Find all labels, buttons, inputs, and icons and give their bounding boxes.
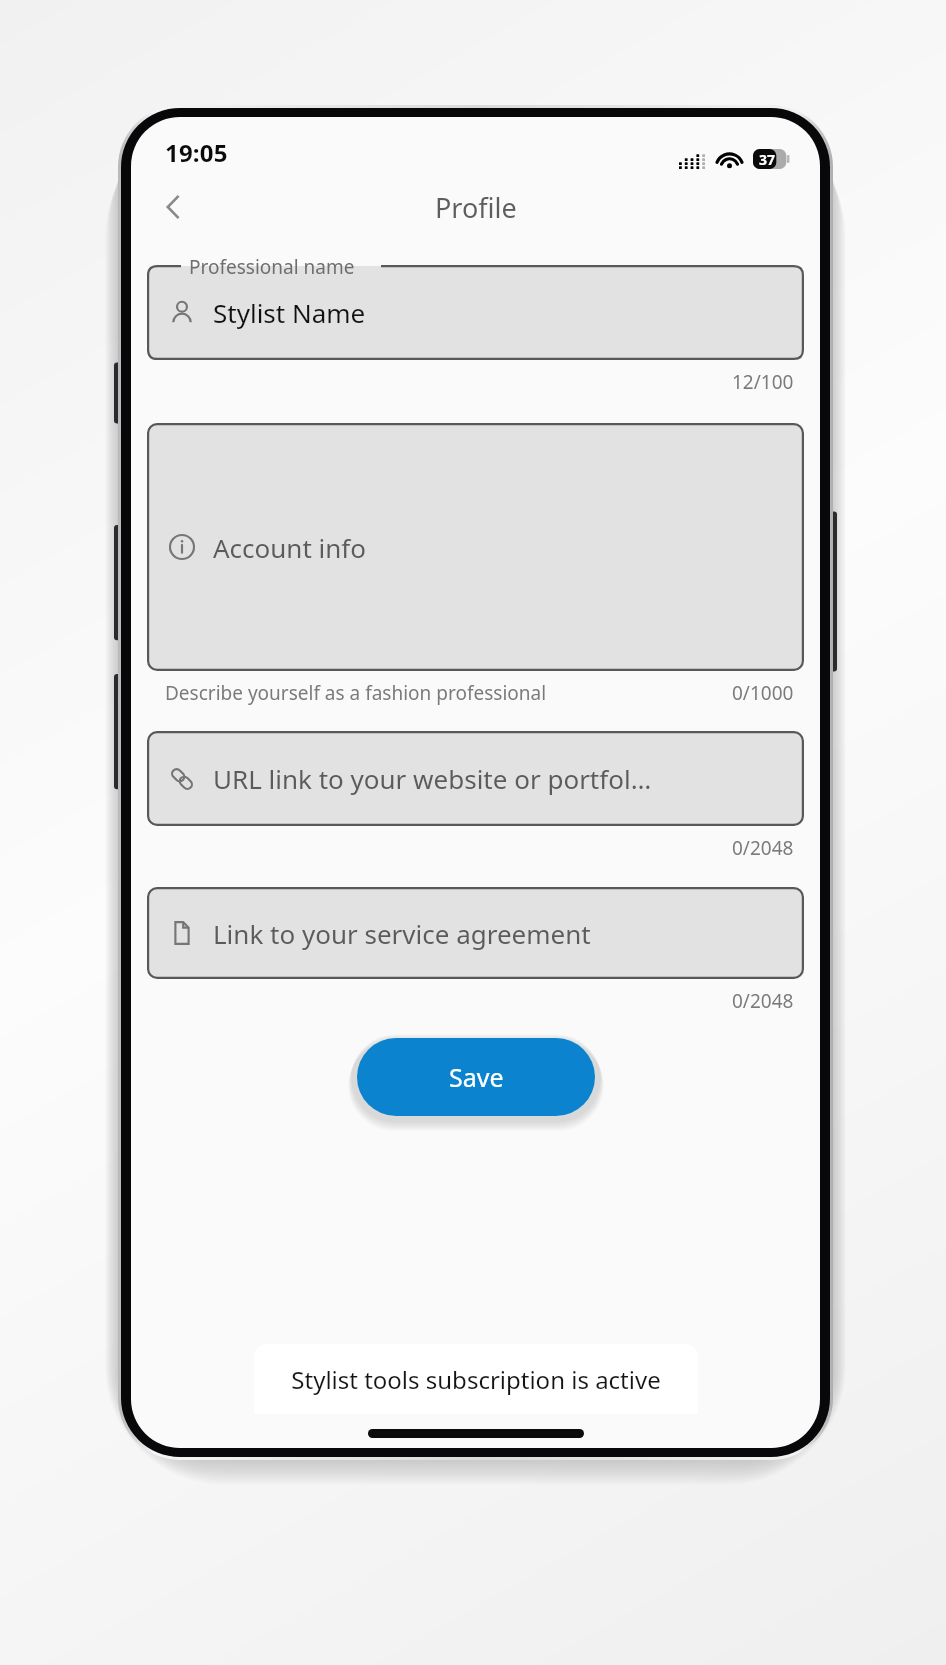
staticText: 19:05: [165, 136, 228, 169]
staticText: Describe yourself as a fashion professio…: [165, 680, 547, 706]
staticText: Professional name: [189, 254, 355, 280]
staticText: Stylist tools subscription is active: [291, 1363, 661, 1396]
staticText: Link to your service agreement: [213, 916, 591, 951]
staticText: 0/2048: [732, 988, 794, 1014]
button[interactable]: Link to your service agreement: [147, 887, 804, 979]
staticText: 0/2048: [732, 835, 794, 861]
staticText: 0/1000: [732, 680, 794, 706]
staticText: Save: [449, 1060, 504, 1094]
button[interactable]: Save: [357, 1038, 595, 1116]
staticText: 12/100: [732, 369, 794, 395]
button[interactable]: Professional name: [147, 265, 804, 360]
button[interactable]: URL link to your website or portfol…: [147, 731, 804, 826]
staticText: 37: [759, 150, 776, 169]
button[interactable]: Account info: [147, 423, 804, 671]
staticText: Profile: [435, 189, 517, 226]
staticText: Stylist Name: [213, 295, 366, 330]
staticText: URL link to your website or portfol…: [213, 761, 652, 796]
button[interactable]: Back: [145, 179, 201, 235]
staticText: Account info: [213, 530, 367, 565]
